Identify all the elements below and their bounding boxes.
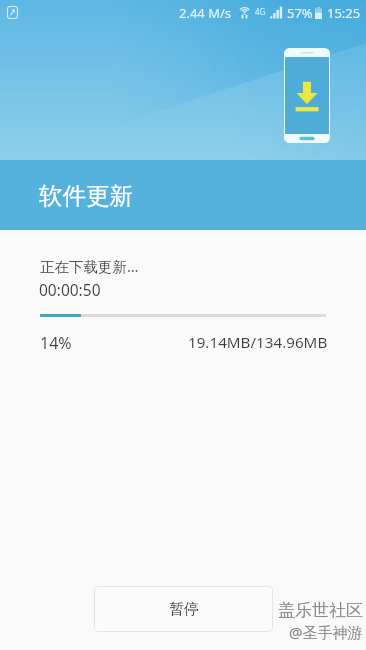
- staticText: @圣手神游: [289, 622, 363, 642]
- staticText: 暂停: [169, 600, 199, 619]
- staticText: 软件更新: [39, 181, 133, 211]
- staticText: 15:25: [327, 4, 361, 22]
- staticText: 4G: [255, 6, 266, 17]
- staticText: 14%: [40, 332, 72, 354]
- staticText: 2.44 M/s: [179, 4, 232, 22]
- other: Software update notification: [7, 6, 18, 19]
- staticText: 57%: [287, 4, 313, 22]
- staticText: 19.14MB/134.96MB: [188, 332, 328, 353]
- staticText: 00:00:50: [39, 279, 101, 300]
- button[interactable]: 暂停: [94, 586, 273, 632]
- staticText: 正在下载更新…: [40, 256, 139, 276]
- staticText: 盖乐世社区: [278, 600, 363, 621]
